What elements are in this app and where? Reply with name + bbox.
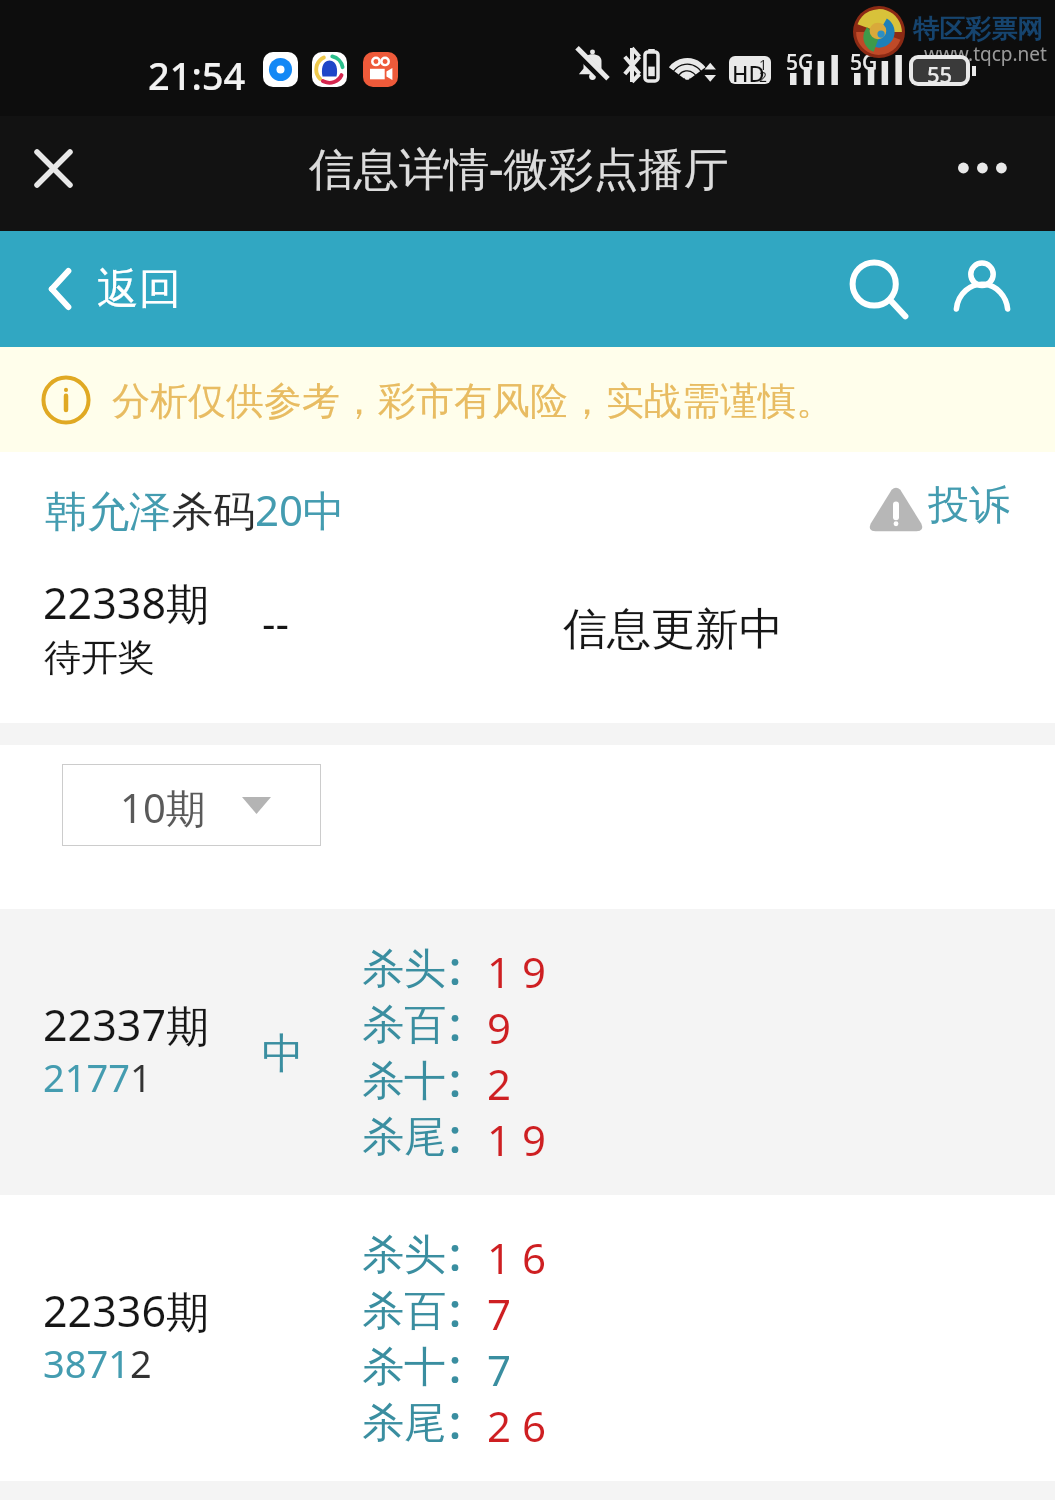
button[interactable]: 返回	[0, 231, 205, 347]
staticText: 中	[262, 1028, 304, 1081]
staticText: 2 6	[487, 1397, 546, 1453]
button[interactable]: 22337期	[0, 909, 1055, 1195]
staticText: 韩允泽杀码20中	[45, 481, 346, 538]
staticText: 1	[759, 56, 768, 74]
staticText: 22338期	[43, 573, 209, 632]
staticText: 杀尾	[362, 1397, 446, 1450]
staticText: 21771	[43, 1051, 152, 1103]
staticText: 特区彩票网	[913, 13, 1043, 46]
staticText: 待开奖	[44, 634, 155, 681]
staticText: HD	[732, 58, 765, 84]
button[interactable]: 投诉	[860, 470, 1020, 538]
staticText: 信息详情-微彩点播厅	[309, 137, 729, 198]
staticText: --	[262, 594, 290, 651]
staticText: 10期	[120, 780, 206, 835]
staticText: 杀百	[362, 999, 446, 1052]
staticText: 22337期	[43, 995, 209, 1054]
button[interactable]: Account	[937, 241, 1033, 337]
staticText: 55	[927, 59, 953, 82]
button[interactable]: More options	[935, 116, 1031, 231]
staticText: 9	[487, 999, 512, 1055]
staticText: 信息更新中	[563, 602, 783, 657]
staticText: 返回	[97, 263, 181, 316]
staticText: 杀头	[362, 1229, 446, 1282]
button[interactable]: Search	[831, 241, 927, 337]
staticText: 2	[759, 67, 768, 84]
staticText: 杀十	[362, 1341, 446, 1394]
button[interactable]: Close	[5, 116, 101, 212]
staticText: 22336期	[43, 1281, 209, 1340]
staticText: 7	[487, 1285, 512, 1341]
staticText: www.tqcp.net	[924, 41, 1047, 67]
staticText: 杀十	[362, 1055, 446, 1108]
staticText: 5G	[786, 48, 814, 77]
button[interactable]: 22336期	[0, 1195, 1055, 1481]
staticText: 7	[487, 1341, 512, 1397]
staticText: 21:54	[148, 49, 246, 101]
staticText: 杀尾	[362, 1111, 446, 1164]
staticText: 分析仅供参考，彩市有风险，实战需谨慎。	[112, 377, 834, 425]
staticText: 杀百	[362, 1285, 446, 1338]
staticText: 2	[487, 1055, 512, 1111]
staticText: 5G	[850, 48, 878, 77]
staticText: 38712	[43, 1337, 152, 1389]
staticText: 投诉	[928, 480, 1010, 532]
button[interactable]: 10期	[62, 764, 321, 846]
staticText: 1 9	[487, 1111, 546, 1167]
staticText: 1 6	[487, 1229, 546, 1285]
staticText: 1 9	[487, 943, 546, 999]
staticText: 杀头	[362, 943, 446, 996]
